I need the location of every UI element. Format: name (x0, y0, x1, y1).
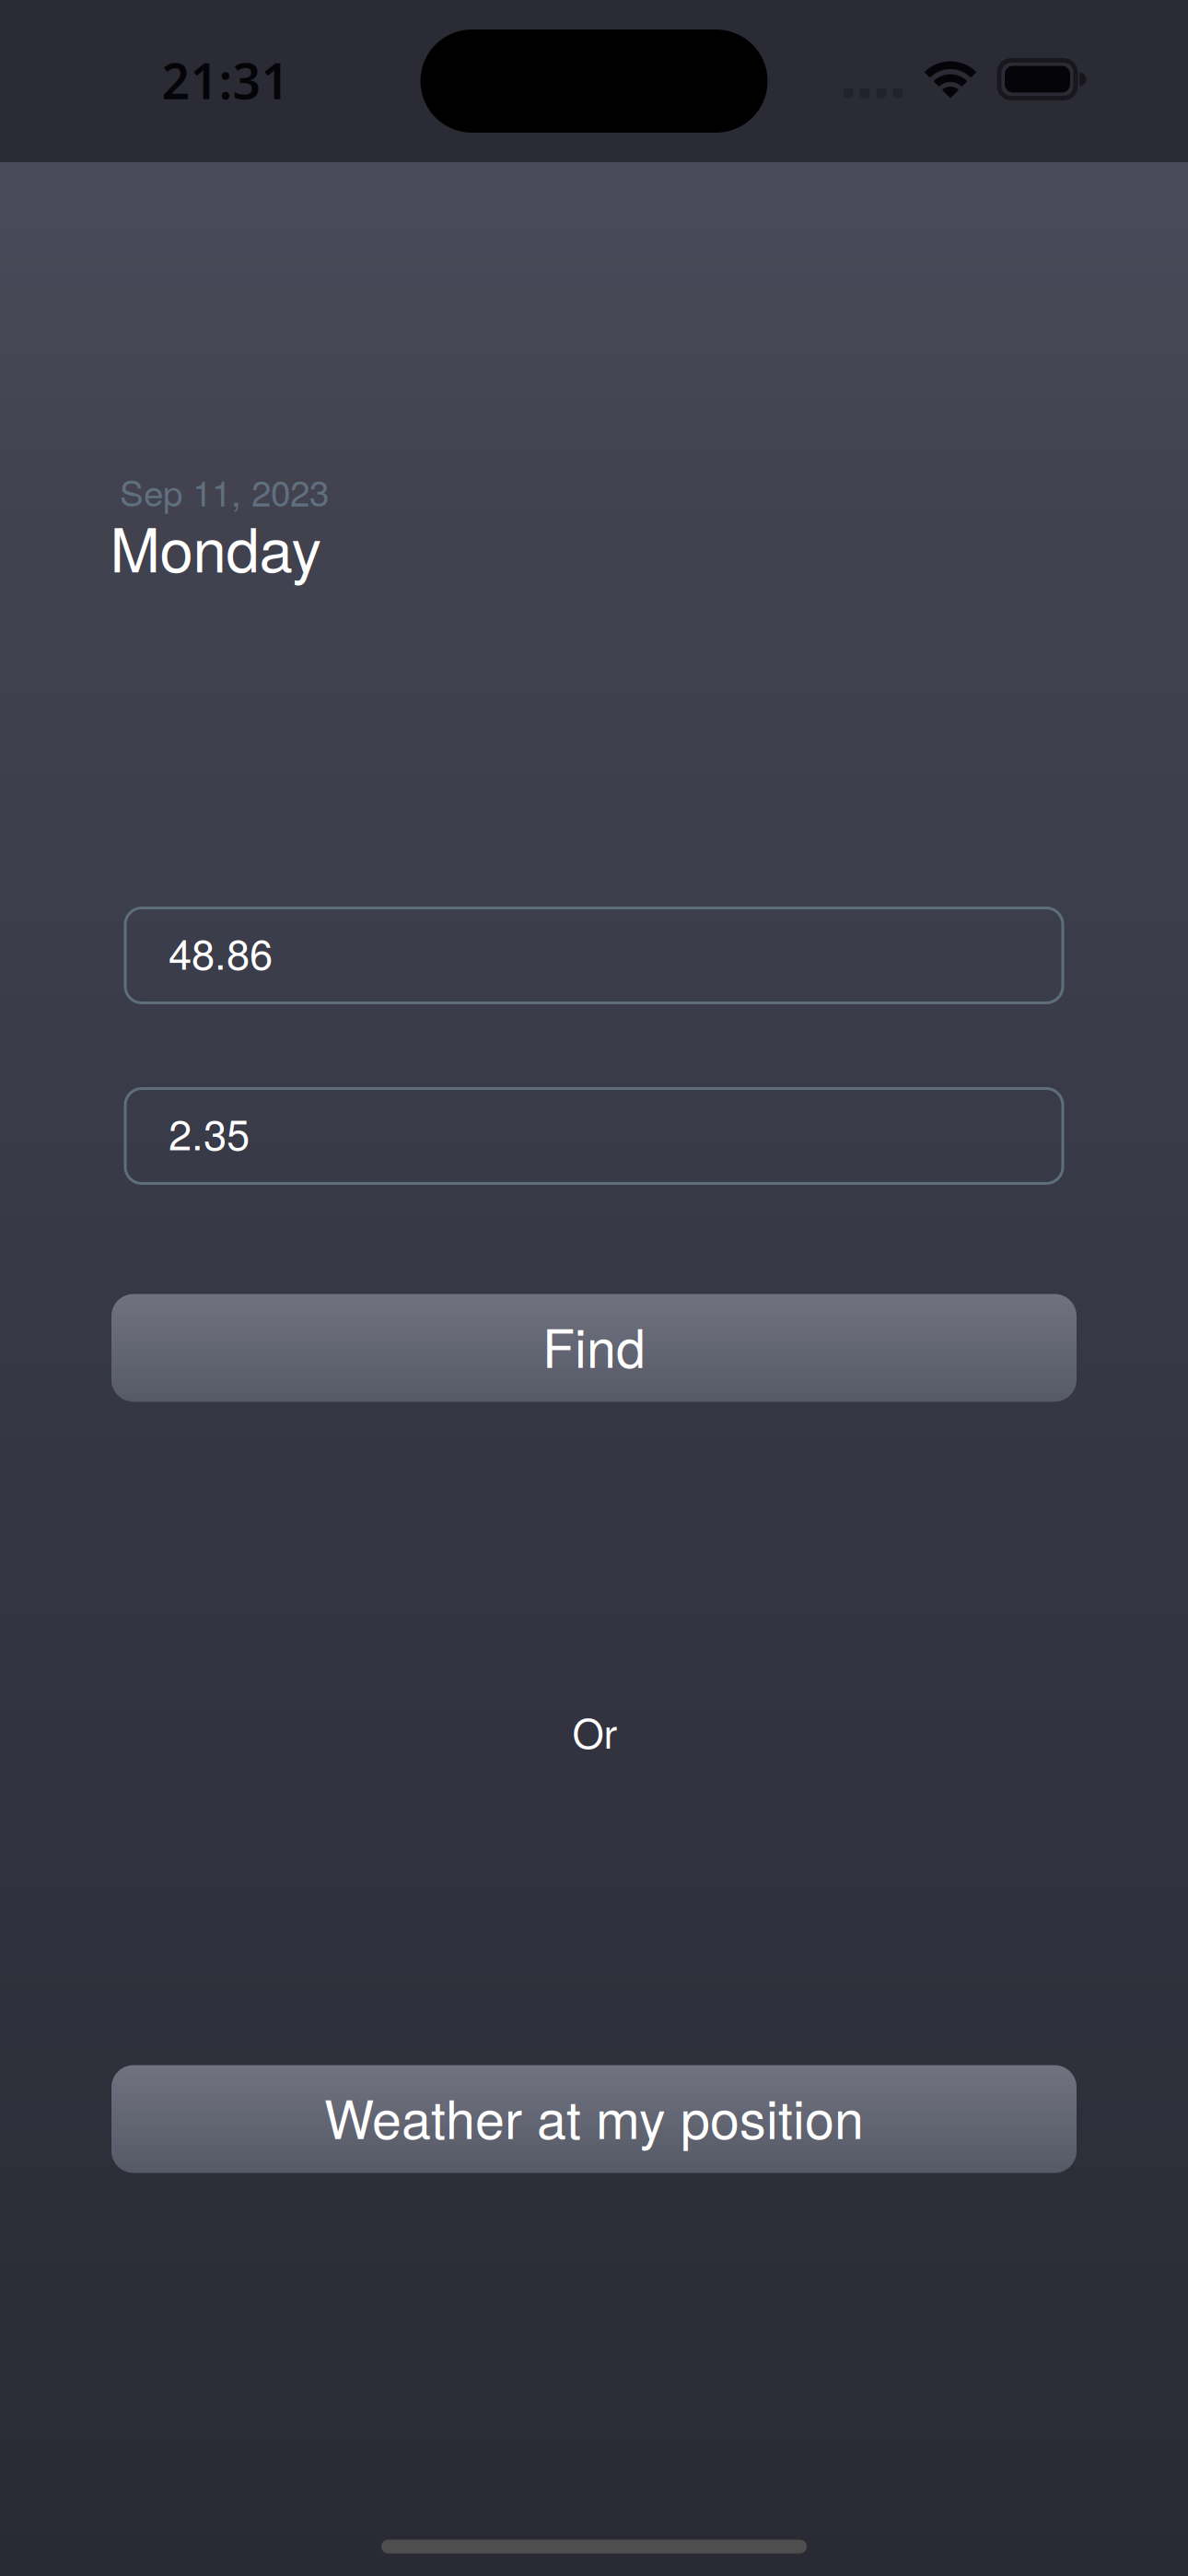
staticText: 2.35 (169, 1102, 250, 1162)
staticText: Monday (110, 503, 322, 589)
staticText: Find (542, 1307, 646, 1383)
staticText: Or (572, 1702, 617, 1760)
button[interactable]: 2.35 (125, 1089, 1063, 1183)
button[interactable]: Find (111, 1294, 1077, 1402)
staticText: 48.86 (169, 922, 273, 982)
staticText: 21:31 (162, 47, 290, 114)
button[interactable]: 48.86 (125, 908, 1063, 1003)
button[interactable]: Weather at my position (111, 2065, 1077, 2173)
staticText: Sep 11, 2023 (120, 466, 329, 517)
staticText: Weather at my position (324, 2078, 864, 2154)
